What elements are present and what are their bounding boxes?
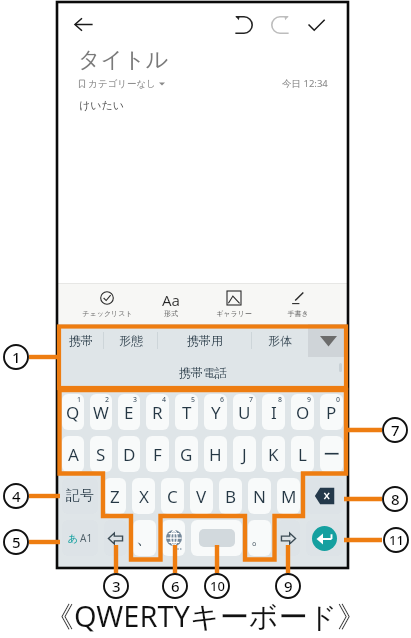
button[interactable]: Next xyxy=(277,520,300,556)
button[interactable]: 5 xyxy=(175,394,198,430)
button[interactable]: Shift xyxy=(104,520,127,556)
staticText: D xyxy=(123,443,136,466)
staticText: Y xyxy=(211,401,221,424)
button[interactable]: Aa xyxy=(142,284,200,324)
staticText: チェックリスト xyxy=(82,309,133,318)
staticText: V xyxy=(196,485,207,508)
button[interactable]: G xyxy=(175,436,198,472)
staticText: 4 xyxy=(12,486,21,506)
button[interactable]: 、 xyxy=(133,520,156,556)
button[interactable]: 8 xyxy=(262,394,285,430)
staticText: 9 xyxy=(307,395,312,405)
button[interactable]: 携帯 xyxy=(57,324,104,357)
staticText: 0 xyxy=(336,395,341,405)
button[interactable]: 9 xyxy=(291,394,314,430)
button[interactable]: A xyxy=(62,436,84,472)
button[interactable]: C xyxy=(161,478,184,514)
button[interactable]: 7 xyxy=(233,394,256,430)
staticText: K xyxy=(268,443,279,466)
button[interactable]: 4 xyxy=(146,394,169,430)
staticText: N xyxy=(253,485,266,508)
button[interactable]: 3 xyxy=(118,394,140,430)
staticText: Z xyxy=(110,485,120,508)
button[interactable]: V xyxy=(190,478,213,514)
button[interactable]: B xyxy=(219,478,242,514)
staticText: 形態 xyxy=(119,333,143,348)
staticText: 1 xyxy=(12,347,21,367)
button[interactable]: D xyxy=(118,436,140,472)
button[interactable]: K xyxy=(262,436,285,472)
button[interactable]: 手書き xyxy=(269,284,327,324)
staticText: 5 xyxy=(191,395,196,405)
button[interactable]: Enter xyxy=(306,520,343,556)
staticText: X xyxy=(139,485,149,508)
staticText: タイトル xyxy=(78,46,169,74)
button[interactable]: N xyxy=(248,478,271,514)
button[interactable]: S xyxy=(90,436,112,472)
button[interactable]: Z xyxy=(104,478,126,514)
staticText: 、 xyxy=(136,528,153,549)
button[interactable]: 形体 xyxy=(252,324,308,357)
staticText: M xyxy=(281,485,297,508)
staticText: O xyxy=(296,401,310,424)
staticText: L xyxy=(298,443,307,466)
button[interactable]: 携帯用 xyxy=(158,324,252,357)
staticText: B xyxy=(225,485,237,508)
button[interactable]: M xyxy=(277,478,300,514)
button[interactable]: Done xyxy=(303,12,329,38)
button[interactable]: 1 xyxy=(62,394,84,430)
button[interactable]: 形態 xyxy=(104,324,158,357)
staticText: I xyxy=(271,401,277,424)
staticText: Q xyxy=(66,401,80,424)
staticText: 11 xyxy=(389,531,404,549)
button[interactable]: X xyxy=(132,478,155,514)
button[interactable]: J xyxy=(233,436,256,472)
staticText: カテゴリーなし xyxy=(88,78,156,90)
button[interactable]: Redo xyxy=(267,12,293,38)
staticText: 5 xyxy=(12,532,21,552)
staticText: 今日 12:34 xyxy=(282,77,328,90)
staticText: けいたい xyxy=(79,98,125,112)
staticText: 7 xyxy=(249,395,254,405)
staticText: 8 xyxy=(391,489,400,509)
button[interactable]: F xyxy=(146,436,169,472)
button[interactable]: Back xyxy=(72,13,95,36)
staticText: 4 xyxy=(162,395,167,405)
staticText: F xyxy=(153,443,162,466)
button[interactable]: H xyxy=(204,436,227,472)
button[interactable]: L xyxy=(291,436,314,472)
button[interactable]: Backspace xyxy=(306,478,343,514)
staticText: Aa xyxy=(162,290,181,306)
staticText: 携帯用 xyxy=(187,333,223,348)
button[interactable]: Expand suggestions xyxy=(308,324,348,357)
staticText: 携帯電話 xyxy=(179,365,227,380)
staticText: 。 xyxy=(251,528,268,549)
button[interactable]: 記号 xyxy=(62,478,98,514)
staticText: 7 xyxy=(391,420,400,440)
button[interactable]: 。 xyxy=(248,520,271,556)
button[interactable]: 0 xyxy=(320,394,343,430)
button[interactable]: あ xyxy=(62,520,98,556)
staticText: 携帯 xyxy=(69,333,93,348)
staticText: 手書き xyxy=(287,309,309,318)
staticText: 2 xyxy=(105,395,110,405)
button[interactable]: 2 xyxy=(90,394,112,430)
button[interactable]: Undo xyxy=(231,12,257,38)
staticText: R xyxy=(152,401,163,424)
staticText: H xyxy=(209,443,222,466)
button[interactable]: ギャラリー xyxy=(205,284,263,324)
button[interactable]: 6 xyxy=(204,394,227,430)
staticText: ー xyxy=(323,444,340,465)
button[interactable]: チェックリスト xyxy=(78,284,136,324)
staticText: ギャラリー xyxy=(216,309,252,318)
button[interactable]: Space xyxy=(191,520,242,556)
staticText: 9 xyxy=(284,576,293,596)
button[interactable]: Language xyxy=(162,520,185,556)
staticText: S xyxy=(96,443,106,466)
staticText: E xyxy=(124,401,134,424)
staticText: 3 xyxy=(133,395,138,405)
staticText: 10 xyxy=(210,577,225,595)
button[interactable]: ー xyxy=(320,436,343,472)
staticText: U xyxy=(238,401,251,424)
staticText: P xyxy=(326,401,337,424)
